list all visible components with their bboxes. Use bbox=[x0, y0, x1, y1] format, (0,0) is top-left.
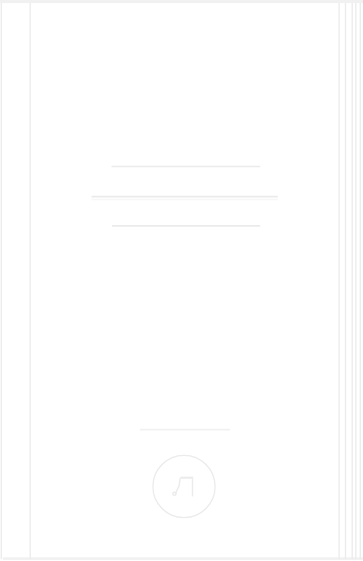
button[interactable]: Track title bbox=[91, 158, 279, 178]
button[interactable]: Track subtitle bbox=[91, 190, 279, 206]
button[interactable]: Seek bar bbox=[140, 423, 230, 437]
button[interactable]: Album bbox=[111, 218, 261, 234]
button[interactable]: Navigation rail bbox=[0, 0, 30, 561]
button[interactable]: Play music bbox=[153, 455, 216, 518]
